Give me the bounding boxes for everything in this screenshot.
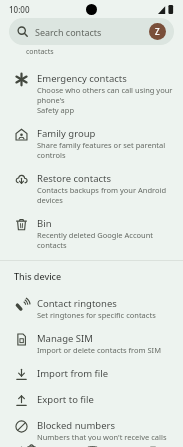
button[interactable]: Blocked numbers: [0, 413, 183, 447]
staticText: Import or delete contacts from SIM: [37, 345, 161, 355]
staticText: Manage SIM: [37, 332, 93, 345]
button[interactable]: Contact ringtones: [0, 291, 183, 326]
staticText: Restore contacts: [37, 172, 112, 185]
button[interactable]: Family group: [0, 121, 183, 166]
staticText: Import from file: [37, 367, 109, 380]
staticText: Emergency contacts: [37, 72, 127, 85]
staticText: Z: [155, 26, 160, 37]
staticText: This device: [14, 270, 62, 282]
button[interactable]: Emergency contacts: [0, 66, 183, 121]
staticText: Export to file: [37, 393, 94, 406]
staticText: Search contacts: [35, 26, 102, 38]
staticText: Numbers that you won't receive calls or …: [37, 432, 173, 441]
staticText: Share family features or set parental co…: [37, 140, 173, 160]
staticText: Set ringtones for specific contacts: [37, 310, 156, 320]
staticText: Blocked numbers: [37, 419, 115, 432]
button[interactable]: Import from file: [0, 361, 183, 387]
button[interactable]: Export to file: [0, 387, 183, 413]
staticText: Contact ringtones: [37, 297, 117, 310]
staticText: 10:00: [9, 4, 30, 15]
button[interactable]: Restore contacts: [0, 166, 183, 211]
staticText: contacts: [26, 47, 54, 57]
staticText: Bin: [37, 217, 52, 230]
staticText: Family group: [37, 127, 96, 140]
button[interactable]: Bin: [0, 211, 183, 256]
staticText: Recently deleted Google Account contacts: [37, 230, 173, 250]
button[interactable]: Search contacts: [9, 18, 174, 45]
staticText: Contacts backups from your Android devic…: [37, 185, 173, 205]
button[interactable]: Manage SIM: [0, 326, 183, 361]
staticText: Choose who others can call using your ph…: [37, 85, 173, 115]
button[interactable]: Account: [149, 23, 166, 40]
